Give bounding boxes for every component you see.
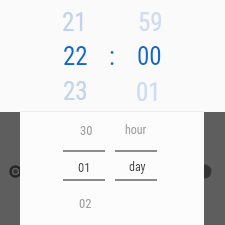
staticText: 01 [136,78,161,107]
staticText: : [109,42,115,71]
staticText: hour [125,123,147,137]
staticText: 01 [78,160,91,175]
button[interactable]: 01 [44,147,124,187]
button[interactable]: 22 [35,36,115,76]
staticText: day [129,160,146,174]
staticText: 00 [137,42,162,71]
button[interactable]: 00 [109,36,189,76]
staticText: 30 [80,123,93,138]
staticText: 02 [79,196,92,211]
staticText: 23 [63,77,88,106]
button[interactable]: day [97,147,177,187]
staticText: 22 [63,42,88,71]
staticText: 21 [62,8,87,37]
staticText: 59 [138,8,163,37]
